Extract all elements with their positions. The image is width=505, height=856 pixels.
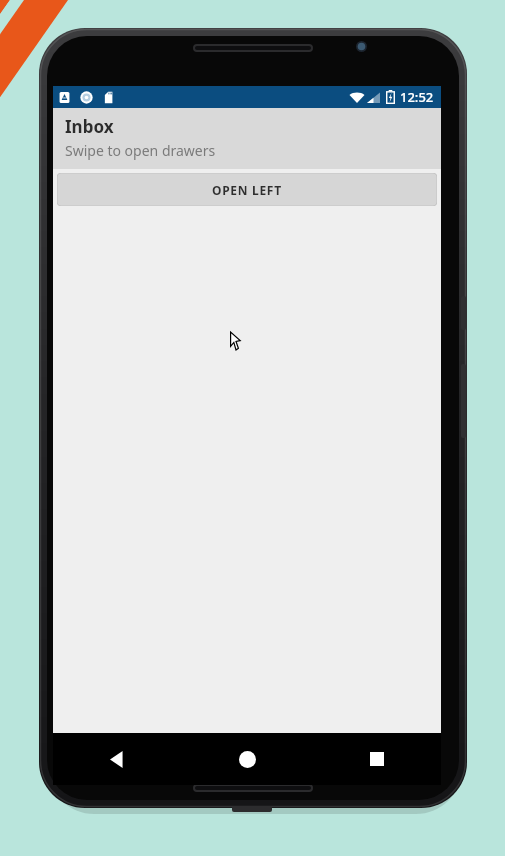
staticText: Swipe to open drawers [65,141,216,160]
button[interactable]: OPEN LEFT [57,173,437,206]
button[interactable]: Back [53,733,183,785]
button[interactable]: Recent apps [312,733,441,785]
staticText: Inbox [65,115,114,138]
staticText: 12:52 [400,88,434,106]
staticText: OPEN LEFT [212,182,282,198]
button[interactable]: Home [183,733,312,785]
